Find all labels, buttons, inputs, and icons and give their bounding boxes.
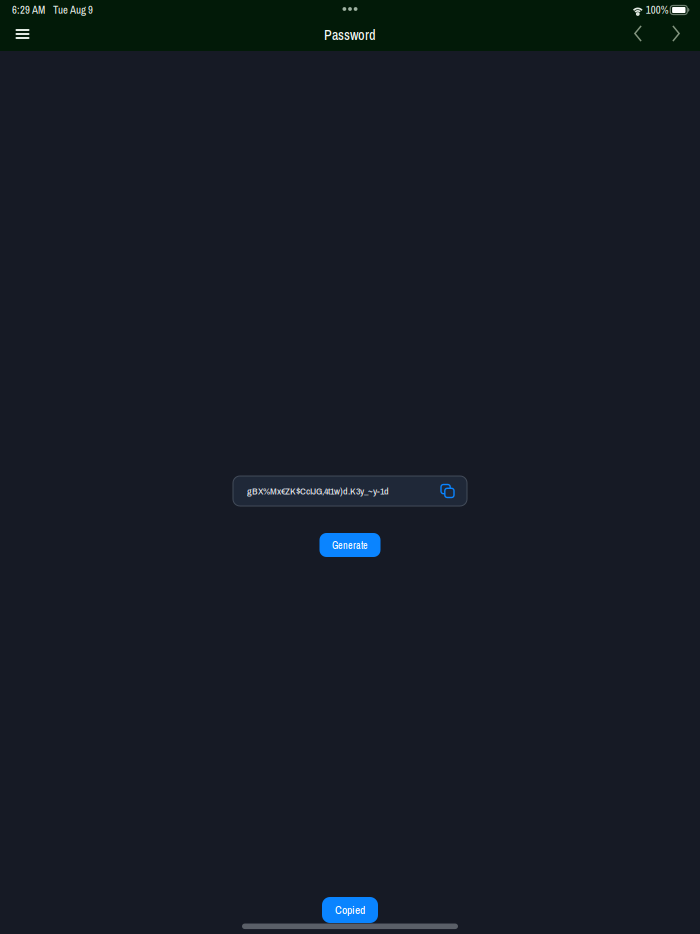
button[interactable]: Generate xyxy=(319,533,380,557)
button[interactable]: Copy password xyxy=(434,477,460,505)
staticText: Generate xyxy=(332,539,368,552)
staticText: 6:29 AM xyxy=(12,3,45,17)
staticText: Password xyxy=(324,26,376,44)
staticText: gBX%Mx€ZK$CcIJG,4t1w)d.K3y_~y-1d xyxy=(247,484,389,498)
button[interactable]: Back xyxy=(619,20,657,51)
staticText: Copied xyxy=(335,902,365,918)
button[interactable]: Menu xyxy=(0,20,44,51)
staticText: Tue Aug 9 xyxy=(53,3,93,17)
button[interactable]: Forward xyxy=(657,20,695,51)
staticText: 100% xyxy=(646,3,669,17)
